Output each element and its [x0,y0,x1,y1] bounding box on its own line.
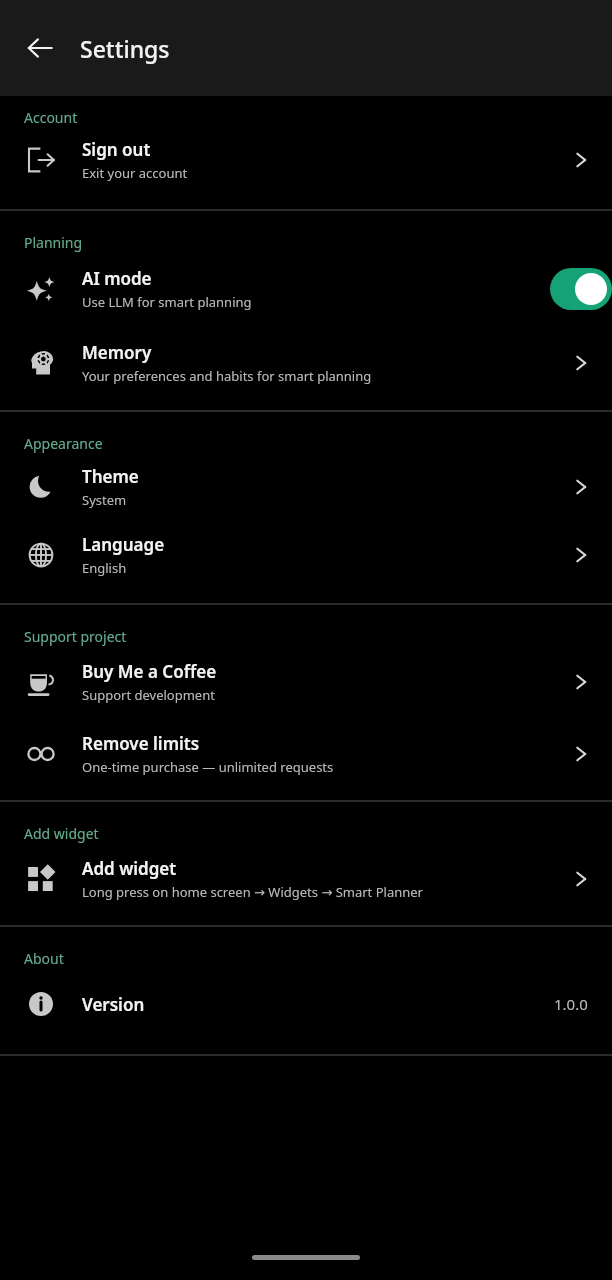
button[interactable]: Memory [0,326,612,400]
staticText: Sign out [82,138,151,161]
staticText: AI mode [82,267,152,290]
button[interactable]: Language [0,521,612,589]
button[interactable]: Back [12,20,68,76]
staticText: Support development [82,686,215,704]
button[interactable]: Buy Me a Coffee [0,646,612,718]
staticText: English [82,559,127,577]
button[interactable]: Add widget [0,843,612,915]
staticText: Account [24,108,78,127]
button[interactable]: Sign out [0,127,612,193]
staticText: Remove limits [82,732,200,755]
button[interactable]: AI mode toggle [550,268,612,310]
staticText: Add widget [24,824,99,843]
staticText: Your preferences and habits for smart pl… [82,367,372,385]
button[interactable]: Version [0,968,612,1040]
staticText: Support project [24,627,127,646]
staticText: Exit your account [82,164,188,182]
staticText: Planning [24,233,83,252]
staticText: Version [82,993,554,1016]
staticText: 1.0.0 [554,994,588,1014]
staticText: Memory [82,341,152,364]
staticText: System [82,491,127,509]
staticText: About [24,949,64,968]
staticText: Use LLM for smart planning [82,293,252,311]
button[interactable]: AI mode [0,252,612,326]
staticText: Appearance [24,434,103,453]
staticText: Buy Me a Coffee [82,660,217,683]
button[interactable]: Theme [0,453,612,521]
button[interactable]: Remove limits [0,718,612,790]
staticText: Long press on home screen → Widgets → Sm… [82,883,423,901]
staticText: Settings [80,33,170,64]
staticText: One-time purchase — unlimited requests [82,758,334,776]
staticText: Theme [82,465,139,488]
staticText: Language [82,533,165,556]
staticText: Add widget [82,857,177,880]
